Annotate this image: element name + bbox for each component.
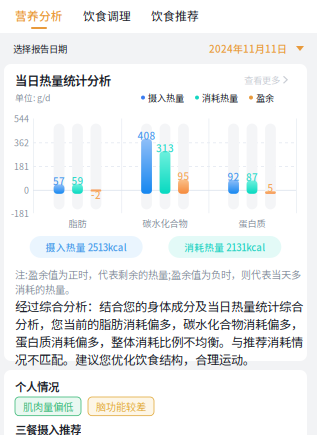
staticText: 544 [14, 112, 29, 125]
staticText: 313 [156, 141, 174, 155]
staticText: 0 [24, 183, 29, 196]
staticText: 脑功能较差 [96, 399, 146, 414]
staticText: 87 [246, 170, 258, 184]
staticText: 消耗热量 2131kcal [184, 240, 265, 254]
staticText: 92 [228, 169, 240, 184]
staticText: 蛋白质 [238, 216, 265, 230]
staticText: 碳水化合物 [142, 216, 187, 230]
staticText: 饮食调理 [83, 7, 131, 24]
staticText: 饮食推荐 [151, 7, 199, 24]
staticText: 盈余 [256, 91, 274, 104]
button[interactable]: 查看更多 [244, 73, 288, 86]
staticText: 肌肉量偏低 [23, 399, 73, 414]
button[interactable]: 摄入热量 2513kcal [30, 236, 143, 258]
staticText: 营养分析 [15, 7, 63, 24]
staticText: 脂肪 [68, 216, 86, 230]
staticText: 三餐摄入推荐 [15, 421, 81, 435]
staticText: 单位: g/d [15, 91, 50, 104]
button[interactable]: 饮食调理 [83, 7, 131, 29]
staticText: 选择报告日期 [13, 42, 67, 55]
staticText: 消耗热量 [202, 91, 238, 104]
staticText: 57 [53, 174, 65, 188]
button[interactable]: 选择报告日期 [0, 33, 317, 64]
staticText: 注:盈余值为正时，代表剩余的热量;盈余值为负时，则代表当天多消耗的热量。 [15, 267, 301, 296]
staticText: 181 [14, 160, 29, 172]
staticText: 408 [138, 128, 156, 143]
staticText: -2 [91, 188, 101, 202]
staticText: 59 [71, 173, 83, 188]
staticText: 5 [267, 180, 273, 195]
button[interactable]: 营养分析 [15, 7, 63, 29]
staticText: 2024年11月11日 [209, 41, 287, 56]
staticText: 摄入热量 2513kcal [46, 240, 127, 254]
staticText: 摄入热量 [148, 91, 184, 104]
staticText: 362 [14, 136, 29, 149]
button[interactable]: 消耗热量 2131kcal [168, 236, 281, 258]
staticText: 查看更多 [244, 73, 280, 86]
staticText: 经过综合分析：结合您的身体成分及当日热量统计综合分析，您当前的脂肪消耗偏多，碳水… [15, 297, 303, 368]
staticText: 个人情况 [15, 378, 59, 395]
button[interactable]: 饮食推荐 [151, 7, 199, 29]
staticText: 当日热量统计分析 [15, 71, 111, 89]
staticText: -181 [11, 207, 29, 219]
staticText: 95 [177, 169, 189, 183]
